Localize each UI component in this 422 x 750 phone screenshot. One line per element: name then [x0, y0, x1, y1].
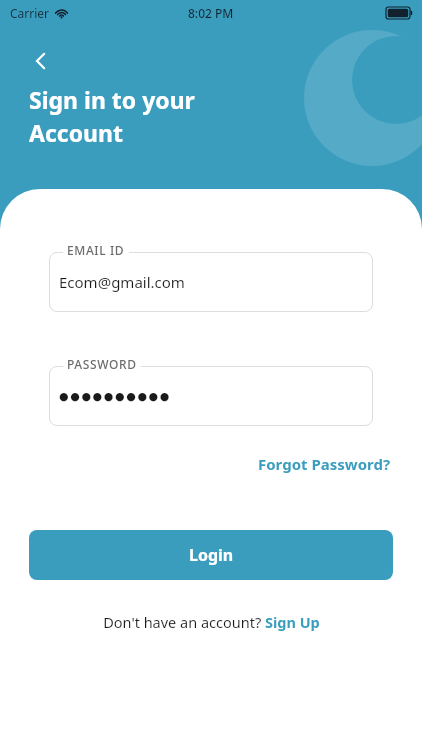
- staticText: Account: [29, 117, 123, 148]
- staticText: 8:02 PM: [188, 5, 234, 21]
- staticText: EMAIL ID: [67, 242, 125, 258]
- button[interactable]: ●●●●●●●●●●: [49, 366, 373, 426]
- staticText: Forgot Password?: [258, 454, 391, 474]
- button[interactable]: Forgot Password?: [254, 450, 395, 478]
- button[interactable]: Ecom@gmail.com: [49, 252, 373, 312]
- staticText: Don't have an account? Sign Up: [103, 612, 320, 632]
- staticText: PASSWORD: [67, 356, 137, 372]
- staticText: Carrier: [10, 5, 50, 21]
- staticText: ●●●●●●●●●●: [59, 390, 171, 403]
- staticText: Ecom@gmail.com: [59, 272, 185, 292]
- staticText: Sign in to your: [29, 84, 195, 115]
- button[interactable]: Don't have an account? Sign Up: [95, 608, 328, 636]
- button[interactable]: Login: [29, 530, 393, 580]
- button[interactable]: Back: [20, 40, 62, 82]
- staticText: Login: [189, 544, 234, 566]
